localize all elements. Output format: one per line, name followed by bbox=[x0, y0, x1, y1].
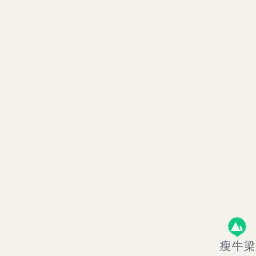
button[interactable]: 瘦牛梁 map marker bbox=[214, 213, 256, 256]
staticText: 瘦牛梁 bbox=[215, 239, 256, 255]
